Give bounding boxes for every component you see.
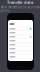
staticText: Move everything to your new phone (0, 5, 39, 12)
staticText: Transfer data (7, 0, 33, 5)
